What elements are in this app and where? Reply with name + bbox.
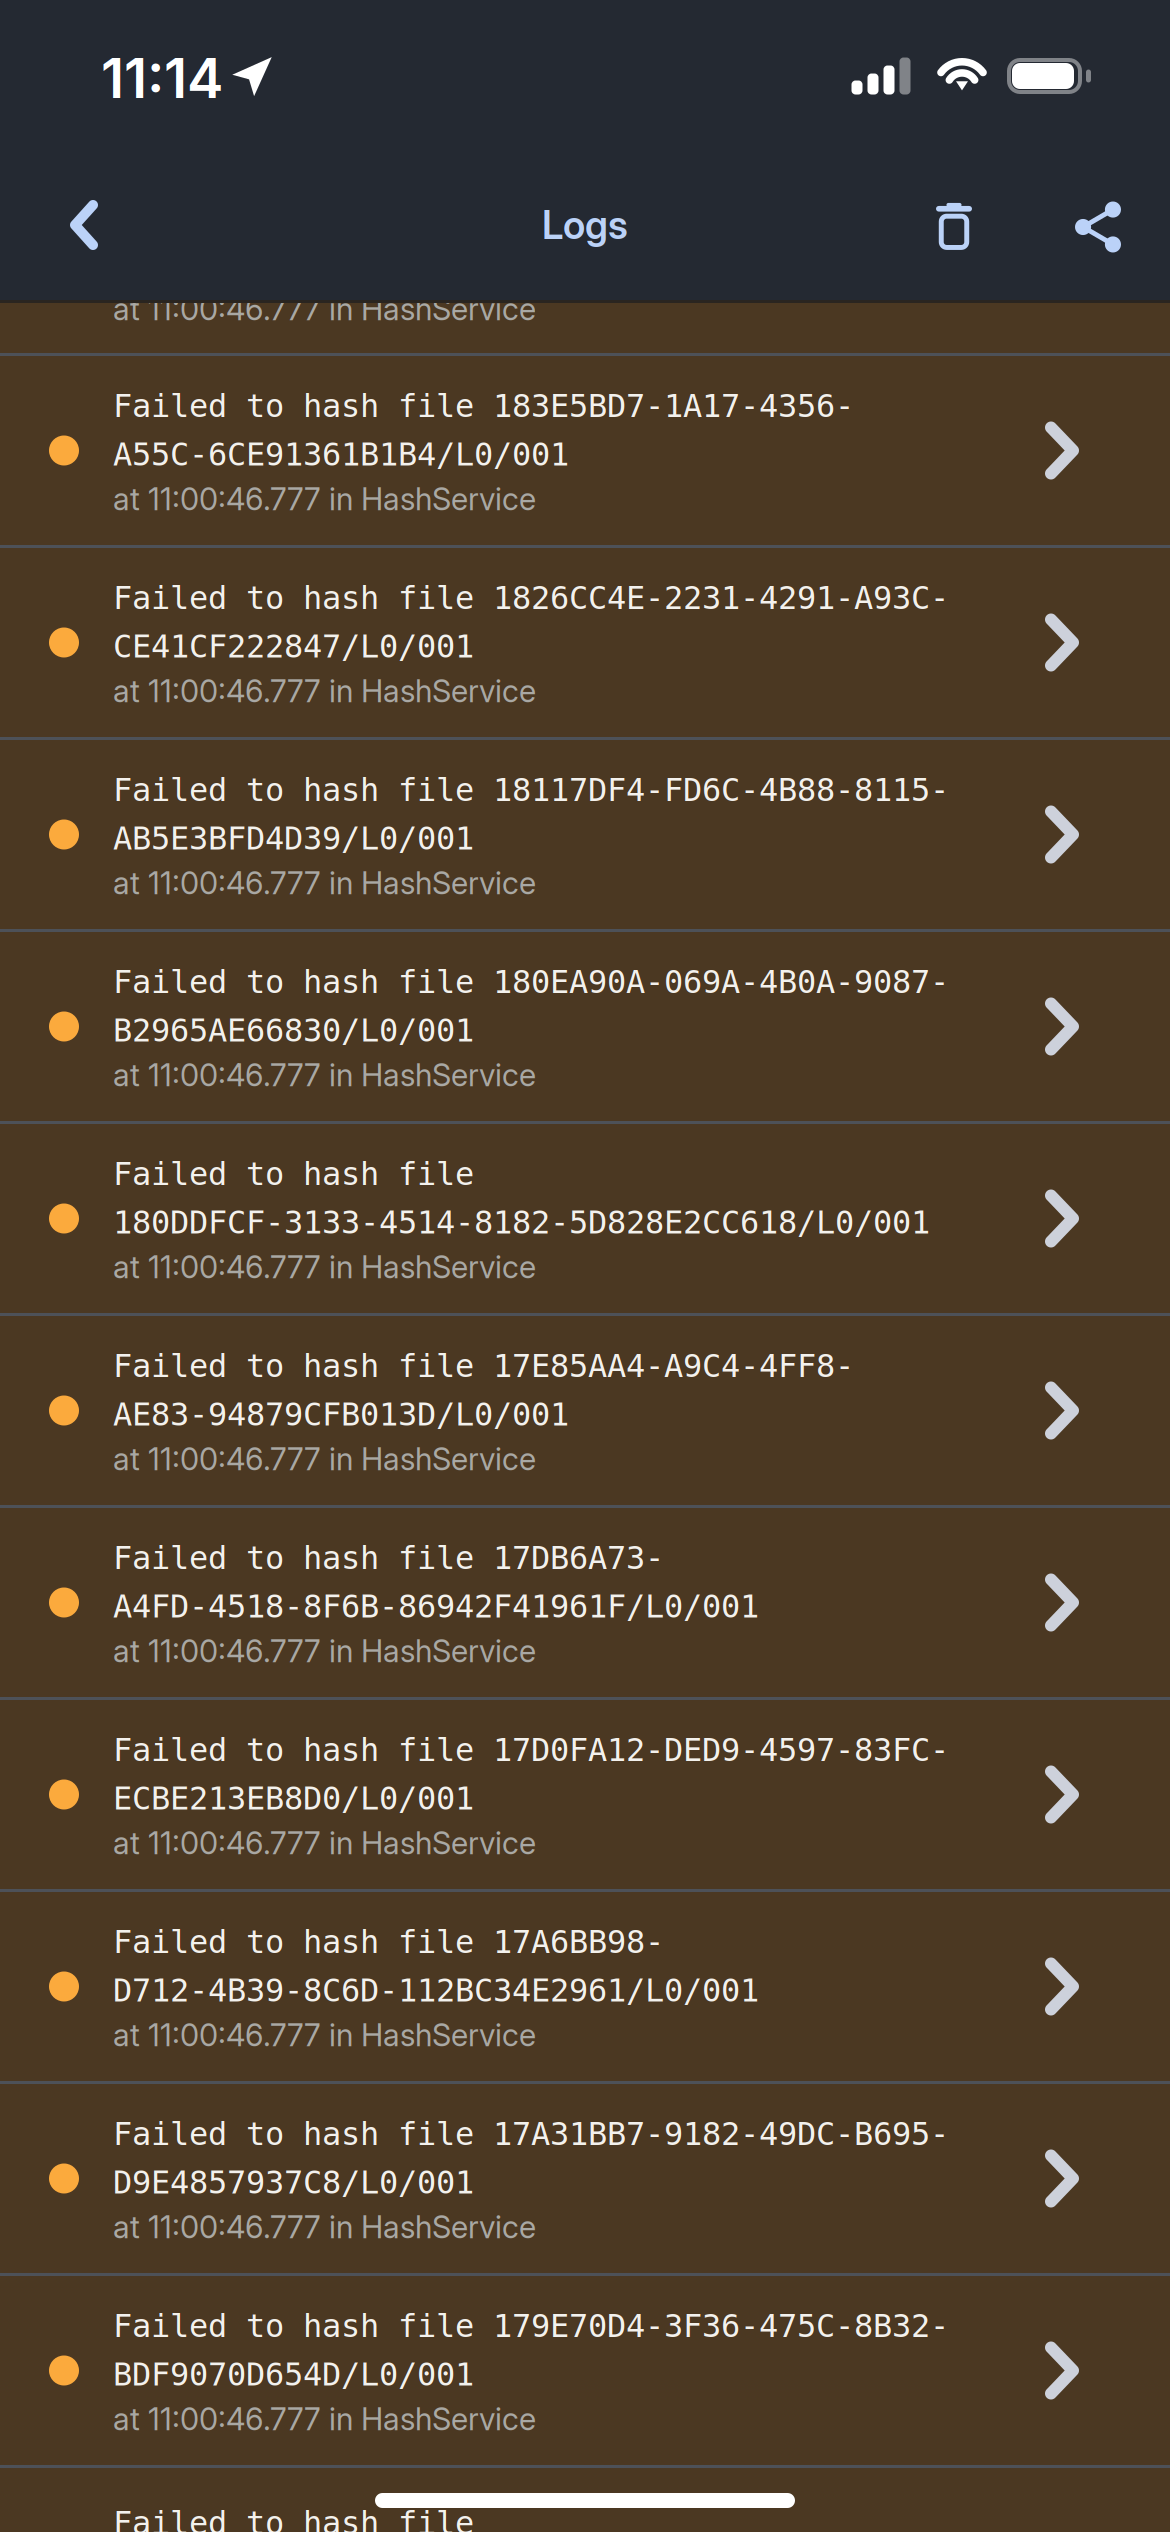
button[interactable]: Failed to hash file 1826CC4E-2231-4291-A…	[0, 548, 1170, 737]
staticText: at 11:00:46.777 in HashService	[113, 290, 536, 327]
staticText: A55C-6CE91361B1B4/L0/001	[113, 436, 569, 473]
button[interactable]: Failed to hash file 17E85AA4-A9C4-4FF8-	[0, 1316, 1170, 1505]
staticText: Failed to hash file	[113, 2504, 474, 2532]
button[interactable]: Back	[0, 152, 150, 298]
staticText: Failed to hash file 179E70D4-3F36-475C-8…	[113, 2307, 949, 2345]
button[interactable]: Failed to hash file 17A6BB98-	[0, 1892, 1170, 2081]
button[interactable]: Share logs	[1017, 151, 1170, 298]
staticText: at 11:00:46.777 in HashService	[113, 1248, 536, 1285]
button[interactable]: Failed to hash file 17D0FA12-DED9-4597-8…	[0, 1700, 1170, 1889]
button[interactable]: Failed to hash file 180EA90A-069A-4B0A-9…	[0, 932, 1170, 1121]
staticText: Failed to hash file 183E5BD7-1A17-4356-	[113, 387, 854, 425]
staticText: at 11:00:46.777 in HashService	[113, 480, 536, 517]
staticText: Logs	[542, 202, 628, 248]
staticText: Failed to hash file	[113, 1155, 474, 1193]
staticText: at 11:00:46.777 in HashService	[113, 2016, 536, 2053]
staticText: Failed to hash file 17A31BB7-9182-49DC-B…	[113, 2115, 949, 2153]
staticText: D9E4857937C8/L0/001	[113, 2164, 474, 2201]
staticText: CE41CF222847/L0/001	[113, 628, 474, 665]
staticText: 180DDFCF-3133-4514-8182-5D828E2CC618/L0/…	[113, 1204, 930, 1241]
staticText: at 11:00:46.777 in HashService	[113, 1440, 536, 1477]
staticText: at 11:00:46.777 in HashService	[113, 672, 536, 709]
staticText: D712-4B39-8C6D-112BC34E2961/L0/001	[113, 1972, 759, 2009]
staticText: Failed to hash file 17E85AA4-A9C4-4FF8-	[113, 1347, 854, 1385]
staticText: ECBE213EB8D0/L0/001	[113, 1780, 474, 1817]
staticText: at 11:00:46.777 in HashService	[113, 1632, 536, 1669]
button[interactable]: Failed to hash file 18117DF4-FD6C-4B88-8…	[0, 740, 1170, 929]
staticText: 11:14	[101, 45, 223, 111]
staticText: Failed to hash file 180EA90A-069A-4B0A-9…	[113, 963, 949, 1001]
button[interactable]: Failed to hash file 179E70D4-3F36-475C-8…	[0, 2276, 1170, 2465]
staticText: at 11:00:46.777 in HashService	[113, 2208, 536, 2245]
staticText: Failed to hash file 17D0FA12-DED9-4597-8…	[113, 1731, 949, 1769]
button[interactable]: Failed to hash file 183E5BD7-1A17-4356-	[0, 356, 1170, 545]
staticText: Failed to hash file 1826CC4E-2231-4291-A…	[113, 579, 949, 617]
staticText: B2965AE66830/L0/001	[113, 1012, 474, 1049]
staticText: A4FD-4518-8F6B-86942F41961F/L0/001	[113, 1588, 759, 1625]
staticText: Failed to hash file 17DB6A73-	[113, 1539, 664, 1577]
staticText: at 11:00:46.777 in HashService	[113, 2400, 536, 2437]
staticText: at 11:00:46.777 in HashService	[113, 1056, 536, 1093]
staticText: AB5E3BFD4D39/L0/001	[113, 820, 474, 857]
staticText: AE83-94879CFB013D/L0/001	[113, 1396, 569, 1433]
staticText: BDF9070D654D/L0/001	[113, 2356, 474, 2393]
staticText: Failed to hash file 18117DF4-FD6C-4B88-8…	[113, 771, 949, 809]
staticText: at 11:00:46.777 in HashService	[113, 864, 536, 901]
button[interactable]: Failed to hash file 17A31BB7-9182-49DC-B…	[0, 2084, 1170, 2273]
button[interactable]: Failed to hash file 17DB6A73-	[0, 1508, 1170, 1697]
staticText: Failed to hash file 17A6BB98-	[113, 1923, 664, 1961]
button[interactable]: Failed to hash file	[0, 1124, 1170, 1313]
button[interactable]: Delete all logs	[878, 153, 1017, 296]
staticText: at 11:00:46.777 in HashService	[113, 1824, 536, 1861]
